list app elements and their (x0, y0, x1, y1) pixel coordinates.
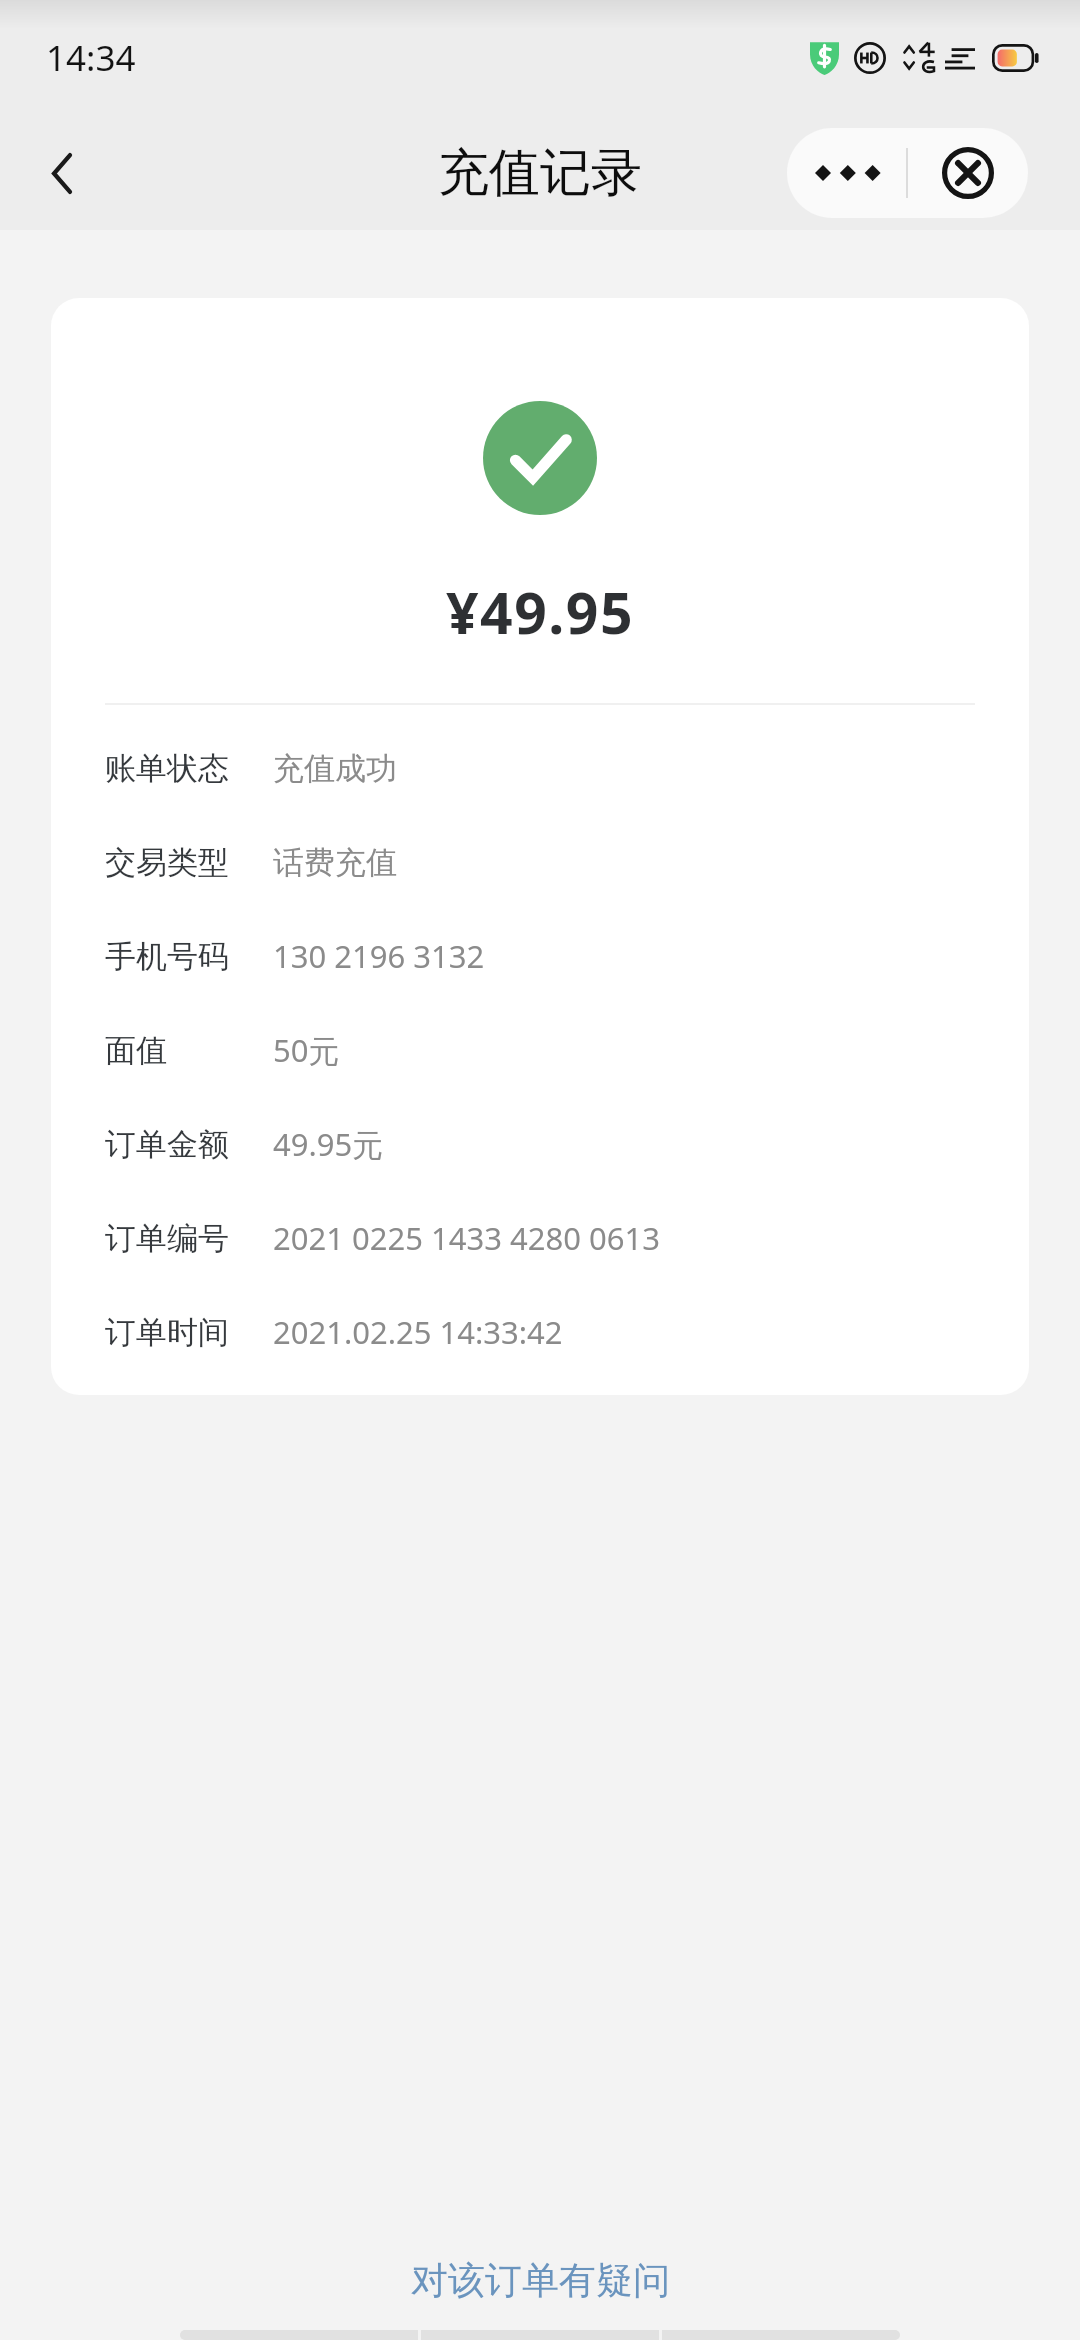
button[interactable]: More options (787, 128, 906, 218)
staticText: 50元 (273, 1029, 340, 1071)
staticText: 话费充值 (273, 843, 397, 882)
staticText: 14:34 (46, 34, 136, 82)
staticText: 130 2196 3132 (273, 935, 485, 977)
button[interactable]: 面值 (105, 1003, 989, 1097)
staticText: ¥49.95 (51, 573, 1029, 651)
button[interactable]: Close (908, 128, 1028, 218)
button[interactable]: 对该订单有疑问 (0, 2230, 1080, 2330)
staticText: 手机号码 (105, 937, 229, 976)
staticText: 账单状态 (105, 749, 229, 788)
button[interactable]: 订单金额 (105, 1097, 989, 1191)
staticText: 充值成功 (273, 749, 397, 788)
staticText: 2021 0225 1433 4280 0613 (273, 1217, 660, 1259)
staticText: 订单金额 (105, 1125, 229, 1164)
button[interactable]: Back (24, 135, 100, 211)
staticText: 对该订单有疑问 (411, 2257, 670, 2304)
staticText: 交易类型 (105, 843, 229, 882)
button[interactable]: 交易类型 (105, 815, 989, 909)
staticText: 2021.02.25 14:33:42 (273, 1311, 563, 1353)
button[interactable]: 订单编号 (105, 1191, 989, 1285)
staticText: 面值 (105, 1031, 167, 1070)
staticText: 订单时间 (105, 1313, 229, 1352)
button[interactable]: 手机号码 (105, 909, 989, 1003)
staticText: 充值记录 (438, 141, 642, 205)
button[interactable]: 账单状态 (105, 721, 989, 815)
button[interactable]: 订单时间 (105, 1285, 989, 1379)
staticText: 49.95元 (273, 1123, 384, 1165)
staticText: 订单编号 (105, 1219, 229, 1258)
